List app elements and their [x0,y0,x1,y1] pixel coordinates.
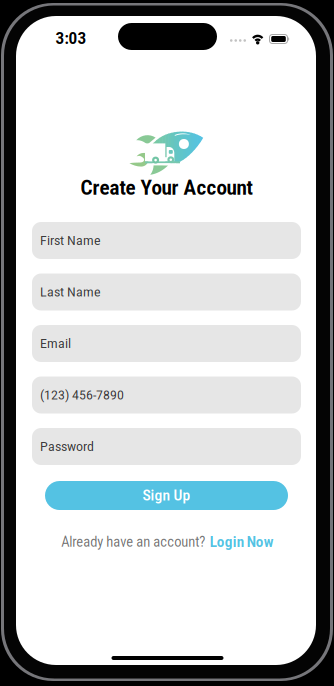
button[interactable]: Login Now [210,534,274,550]
staticText: Email [40,336,71,351]
staticText: Login Now [210,534,274,550]
staticText: Create Your Account [80,176,252,200]
staticText: First Name [40,233,101,248]
staticText: (123) 456-7890 [40,387,124,403]
button[interactable]: Sign Up [45,481,288,510]
staticText: Password [40,439,94,454]
staticText: Sign Up [142,487,190,504]
staticText: Already have an account? [61,534,205,550]
staticText: 3:03 [55,29,86,48]
staticText: Last Name [40,284,101,300]
